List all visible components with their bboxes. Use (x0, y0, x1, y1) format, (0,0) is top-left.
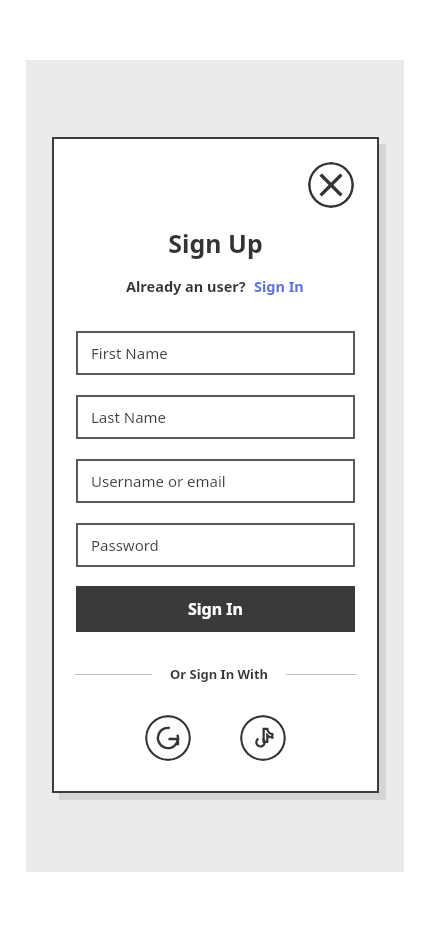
staticText: Sign In (254, 276, 304, 296)
staticText: Sign In (188, 598, 243, 620)
button[interactable]: Close (308, 162, 354, 208)
staticText: Password (91, 535, 159, 555)
button[interactable]: Sign In (253, 275, 305, 297)
button[interactable]: First Name (76, 331, 355, 375)
button[interactable]: Last Name (76, 395, 355, 439)
staticText: Last Name (91, 407, 167, 427)
button[interactable]: Username or email (76, 459, 355, 503)
staticText: Or Sign In With (170, 665, 269, 683)
staticText: Already an user? (126, 276, 246, 296)
button[interactable]: Sign in with TikTok (240, 715, 286, 761)
staticText: Username or email (91, 471, 226, 491)
button[interactable]: Sign in with Google (145, 715, 191, 761)
button[interactable]: Sign In (76, 586, 355, 632)
staticText: First Name (91, 343, 168, 363)
staticText: Sign Up (168, 226, 263, 260)
button[interactable]: Password (76, 523, 355, 567)
